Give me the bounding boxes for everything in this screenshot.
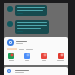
button[interactable] <box>15 5 47 16</box>
button[interactable]: Open app <box>56 53 65 61</box>
other: Sender avatar <box>7 21 13 27</box>
button[interactable]: Open app <box>7 53 15 61</box>
button[interactable]: Open app <box>23 53 31 61</box>
other: Sender avatar <box>7 6 13 12</box>
button[interactable]: Open app <box>4 37 68 65</box>
button[interactable] <box>4 67 68 75</box>
button[interactable]: Open app <box>40 53 48 61</box>
button[interactable] <box>15 20 49 34</box>
